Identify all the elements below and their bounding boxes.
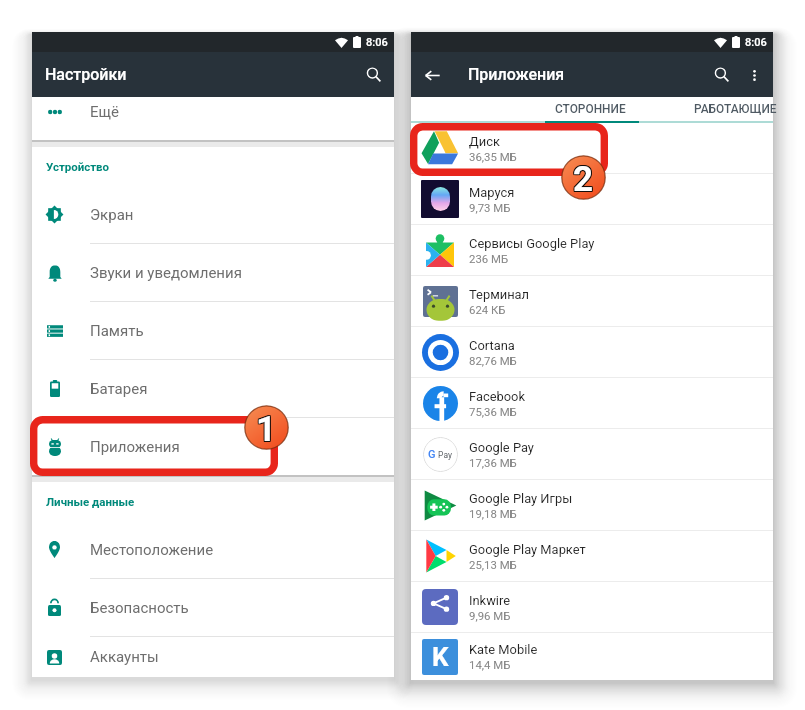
staticText: Память <box>90 322 144 340</box>
staticText: 1 <box>256 408 277 449</box>
staticText: 2 <box>574 159 595 200</box>
staticText: 8:06 <box>745 36 767 49</box>
staticText: Google Pay <box>469 440 534 455</box>
button[interactable]: Search <box>359 60 389 90</box>
staticText: Cortana <box>469 338 515 353</box>
staticText: Аккаунты <box>90 648 159 666</box>
staticText: Ещё <box>90 103 119 121</box>
staticText: 624 КБ <box>469 303 506 316</box>
button[interactable]: More options <box>738 59 770 91</box>
button[interactable]: Сервисы Google Play <box>411 225 773 275</box>
staticText: Сервисы Google Play <box>469 236 595 251</box>
button[interactable]: Звуки и уведомления <box>32 244 394 301</box>
staticText: 2 <box>573 160 594 201</box>
staticText: 2 <box>573 158 594 199</box>
staticText: G <box>428 448 436 461</box>
staticText: 8:06 <box>366 36 388 49</box>
button[interactable]: Маруся <box>411 174 773 224</box>
staticText: 2 <box>574 158 595 199</box>
staticText: 1 <box>256 409 277 450</box>
staticText: 36,35 МБ <box>469 150 517 163</box>
staticText: Pay <box>436 450 453 460</box>
button[interactable]: СТОРОННИЕ <box>555 102 626 116</box>
button[interactable]: Search <box>706 59 738 91</box>
staticText: 25,13 МБ <box>469 558 517 571</box>
button[interactable]: Безопасность <box>32 579 394 636</box>
staticText: 9,96 МБ <box>469 609 511 622</box>
staticText: 1 <box>256 410 277 451</box>
button[interactable]: Ещё <box>32 97 394 140</box>
staticText: K <box>432 642 449 672</box>
button[interactable]: Батарея <box>32 360 394 417</box>
button[interactable]: Терминал <box>411 276 773 326</box>
staticText: Facebook <box>469 389 525 404</box>
button[interactable]: Диск <box>411 123 773 173</box>
staticText: Kate Mobile <box>469 642 538 657</box>
staticText: Приложения <box>468 65 565 84</box>
staticText: Безопасность <box>90 599 189 617</box>
button[interactable]: РАБОТАЮЩИЕ <box>694 102 777 116</box>
staticText: 236 МБ <box>469 252 509 265</box>
staticText: Приложения <box>90 438 180 456</box>
staticText: Терминал <box>469 287 530 302</box>
button[interactable]: Facebook <box>411 378 773 428</box>
staticText: Google Play Игры <box>469 491 573 506</box>
staticText: 82,76 МБ <box>469 354 517 367</box>
staticText: Экран <box>90 206 134 224</box>
button[interactable]: Cortana <box>411 327 773 377</box>
staticText: 19,18 МБ <box>469 507 517 520</box>
button[interactable]: Google Play Игры <box>411 480 773 530</box>
button[interactable]: Экран <box>32 186 394 243</box>
staticText: 2 <box>572 160 593 201</box>
staticText: 17,36 МБ <box>469 456 517 469</box>
staticText: Местоположение <box>90 541 214 559</box>
staticText: Звуки и уведомления <box>90 264 242 282</box>
staticText: 1 <box>257 408 278 449</box>
staticText: 75,36 МБ <box>469 405 517 418</box>
button[interactable]: Приложения <box>32 418 394 475</box>
button[interactable]: Аккаунты <box>32 637 394 677</box>
staticText: 1 <box>255 409 276 450</box>
staticText: Маруся <box>469 185 515 200</box>
button[interactable]: Google Play Маркет <box>411 531 773 581</box>
button[interactable]: K <box>411 633 773 680</box>
staticText: Батарея <box>90 380 148 398</box>
staticText: 14,4 МБ <box>469 658 511 671</box>
staticText: Устройство <box>46 160 110 173</box>
staticText: 1 <box>257 410 278 451</box>
staticText: Inkwire <box>469 593 511 608</box>
staticText: 1 <box>255 408 276 449</box>
staticText: 2 <box>572 158 593 199</box>
staticText: Диск <box>469 134 500 149</box>
button[interactable]: Память <box>32 302 394 359</box>
staticText: 9,73 МБ <box>469 201 511 214</box>
staticText: Личные данные <box>46 495 135 508</box>
staticText: 2 <box>573 159 594 200</box>
staticText: Google Play Маркет <box>469 542 586 557</box>
staticText: Настройки <box>45 65 127 84</box>
staticText: 1 <box>257 409 278 450</box>
staticText: 2 <box>574 160 595 201</box>
button[interactable]: G <box>411 429 773 479</box>
button[interactable]: Back <box>417 60 447 90</box>
button[interactable]: Местоположение <box>32 521 394 578</box>
staticText: 2 <box>572 159 593 200</box>
button[interactable]: Inkwire <box>411 582 773 632</box>
staticText: 1 <box>255 410 276 451</box>
